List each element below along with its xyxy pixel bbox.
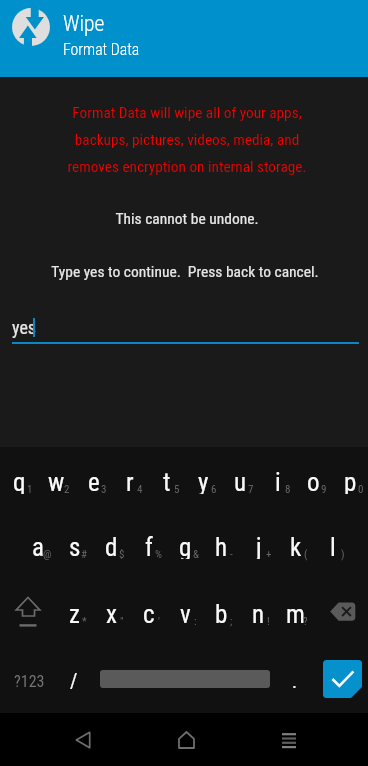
staticText: ?123 xyxy=(14,672,45,691)
button[interactable]: Back xyxy=(53,713,113,766)
button[interactable] xyxy=(166,593,203,637)
staticText: - xyxy=(230,548,233,561)
button[interactable] xyxy=(294,461,331,505)
button[interactable] xyxy=(55,593,92,637)
staticText: % xyxy=(155,548,162,561)
staticText: k xyxy=(290,533,302,559)
button[interactable] xyxy=(276,593,313,637)
staticText: y xyxy=(198,468,209,494)
button[interactable] xyxy=(92,526,129,570)
button[interactable] xyxy=(331,461,368,505)
staticText: p xyxy=(344,468,357,494)
staticText: yes xyxy=(12,317,37,338)
staticText: ' xyxy=(158,615,160,628)
staticText: 4 xyxy=(137,483,143,496)
staticText: This cannot be undone. xyxy=(3,210,368,228)
staticText: & xyxy=(193,548,199,561)
button[interactable]: Shift xyxy=(7,591,55,635)
button[interactable]: . xyxy=(278,660,312,702)
staticText: ! xyxy=(267,615,270,628)
staticText: @ xyxy=(43,548,52,561)
button[interactable] xyxy=(129,526,166,570)
staticText: # xyxy=(81,548,88,561)
staticText: w xyxy=(48,468,65,494)
staticText: b xyxy=(215,600,228,626)
staticText: 7 xyxy=(248,483,254,496)
button[interactable] xyxy=(276,526,313,570)
button[interactable]: Text input xyxy=(12,316,359,344)
staticText: r xyxy=(126,468,134,494)
button[interactable] xyxy=(18,526,55,570)
staticText: ; xyxy=(230,615,233,628)
staticText: 1 xyxy=(27,483,33,496)
button[interactable] xyxy=(239,593,276,637)
staticText: 5 xyxy=(174,483,180,496)
button[interactable] xyxy=(184,461,221,505)
staticText: f xyxy=(145,533,153,559)
staticText: e xyxy=(88,468,100,494)
staticText: Type yes to continue. Press back to canc… xyxy=(1,263,368,281)
button[interactable] xyxy=(55,526,92,570)
staticText: + xyxy=(266,548,272,561)
button[interactable] xyxy=(166,526,203,570)
button[interactable] xyxy=(239,526,276,570)
button[interactable] xyxy=(147,461,184,505)
staticText: Format Data will wipe all of your apps, … xyxy=(3,104,368,176)
staticText: 2 xyxy=(64,483,70,496)
staticText: $ xyxy=(119,548,125,561)
staticText: 9 xyxy=(321,483,327,496)
staticText: s xyxy=(69,533,81,559)
button[interactable] xyxy=(258,461,295,505)
staticText: / xyxy=(70,669,78,692)
staticText: . xyxy=(292,670,298,692)
staticText: c xyxy=(143,600,155,626)
button[interactable] xyxy=(37,461,74,505)
staticText: 0 xyxy=(358,483,364,496)
button[interactable]: Menu xyxy=(259,713,319,766)
button[interactable] xyxy=(110,461,147,505)
button[interactable] xyxy=(129,593,166,637)
staticText: d xyxy=(105,533,118,559)
button[interactable]: Wipe xyxy=(0,0,368,77)
staticText: 3 xyxy=(101,483,107,496)
staticText: 8 xyxy=(285,483,291,496)
staticText: n xyxy=(252,600,265,626)
staticText: m xyxy=(286,600,305,626)
button[interactable] xyxy=(202,593,239,637)
staticText: * xyxy=(82,615,87,628)
staticText: v xyxy=(180,600,191,626)
button[interactable] xyxy=(92,593,129,637)
button[interactable] xyxy=(74,461,111,505)
button[interactable] xyxy=(221,461,258,505)
staticText: u xyxy=(234,468,247,494)
staticText: j xyxy=(256,533,262,559)
button[interactable] xyxy=(313,526,350,570)
staticText: o xyxy=(307,468,320,494)
staticText: a xyxy=(32,533,44,559)
staticText: : xyxy=(194,615,197,628)
staticText: ) xyxy=(341,548,345,561)
button[interactable]: Backspace xyxy=(329,601,357,623)
button[interactable]: Enter xyxy=(323,660,362,698)
staticText: Format Data xyxy=(63,40,140,59)
button[interactable]: / xyxy=(57,659,91,701)
button[interactable] xyxy=(202,526,239,570)
staticText: ( xyxy=(304,548,308,561)
staticText: q xyxy=(13,468,26,494)
staticText: z xyxy=(69,600,80,626)
staticText: " xyxy=(120,615,124,628)
button[interactable]: Home xyxy=(156,713,216,766)
staticText: x xyxy=(106,600,117,626)
staticText: l xyxy=(330,533,336,559)
staticText: g xyxy=(179,533,192,559)
staticText: ? xyxy=(303,615,308,628)
staticText: i xyxy=(275,468,281,494)
button[interactable]: ?123 xyxy=(2,660,56,702)
staticText: h xyxy=(215,533,228,559)
staticText: Wipe xyxy=(63,11,105,36)
button[interactable] xyxy=(0,461,37,505)
staticText: t xyxy=(163,468,171,494)
staticText: 6 xyxy=(211,483,217,496)
